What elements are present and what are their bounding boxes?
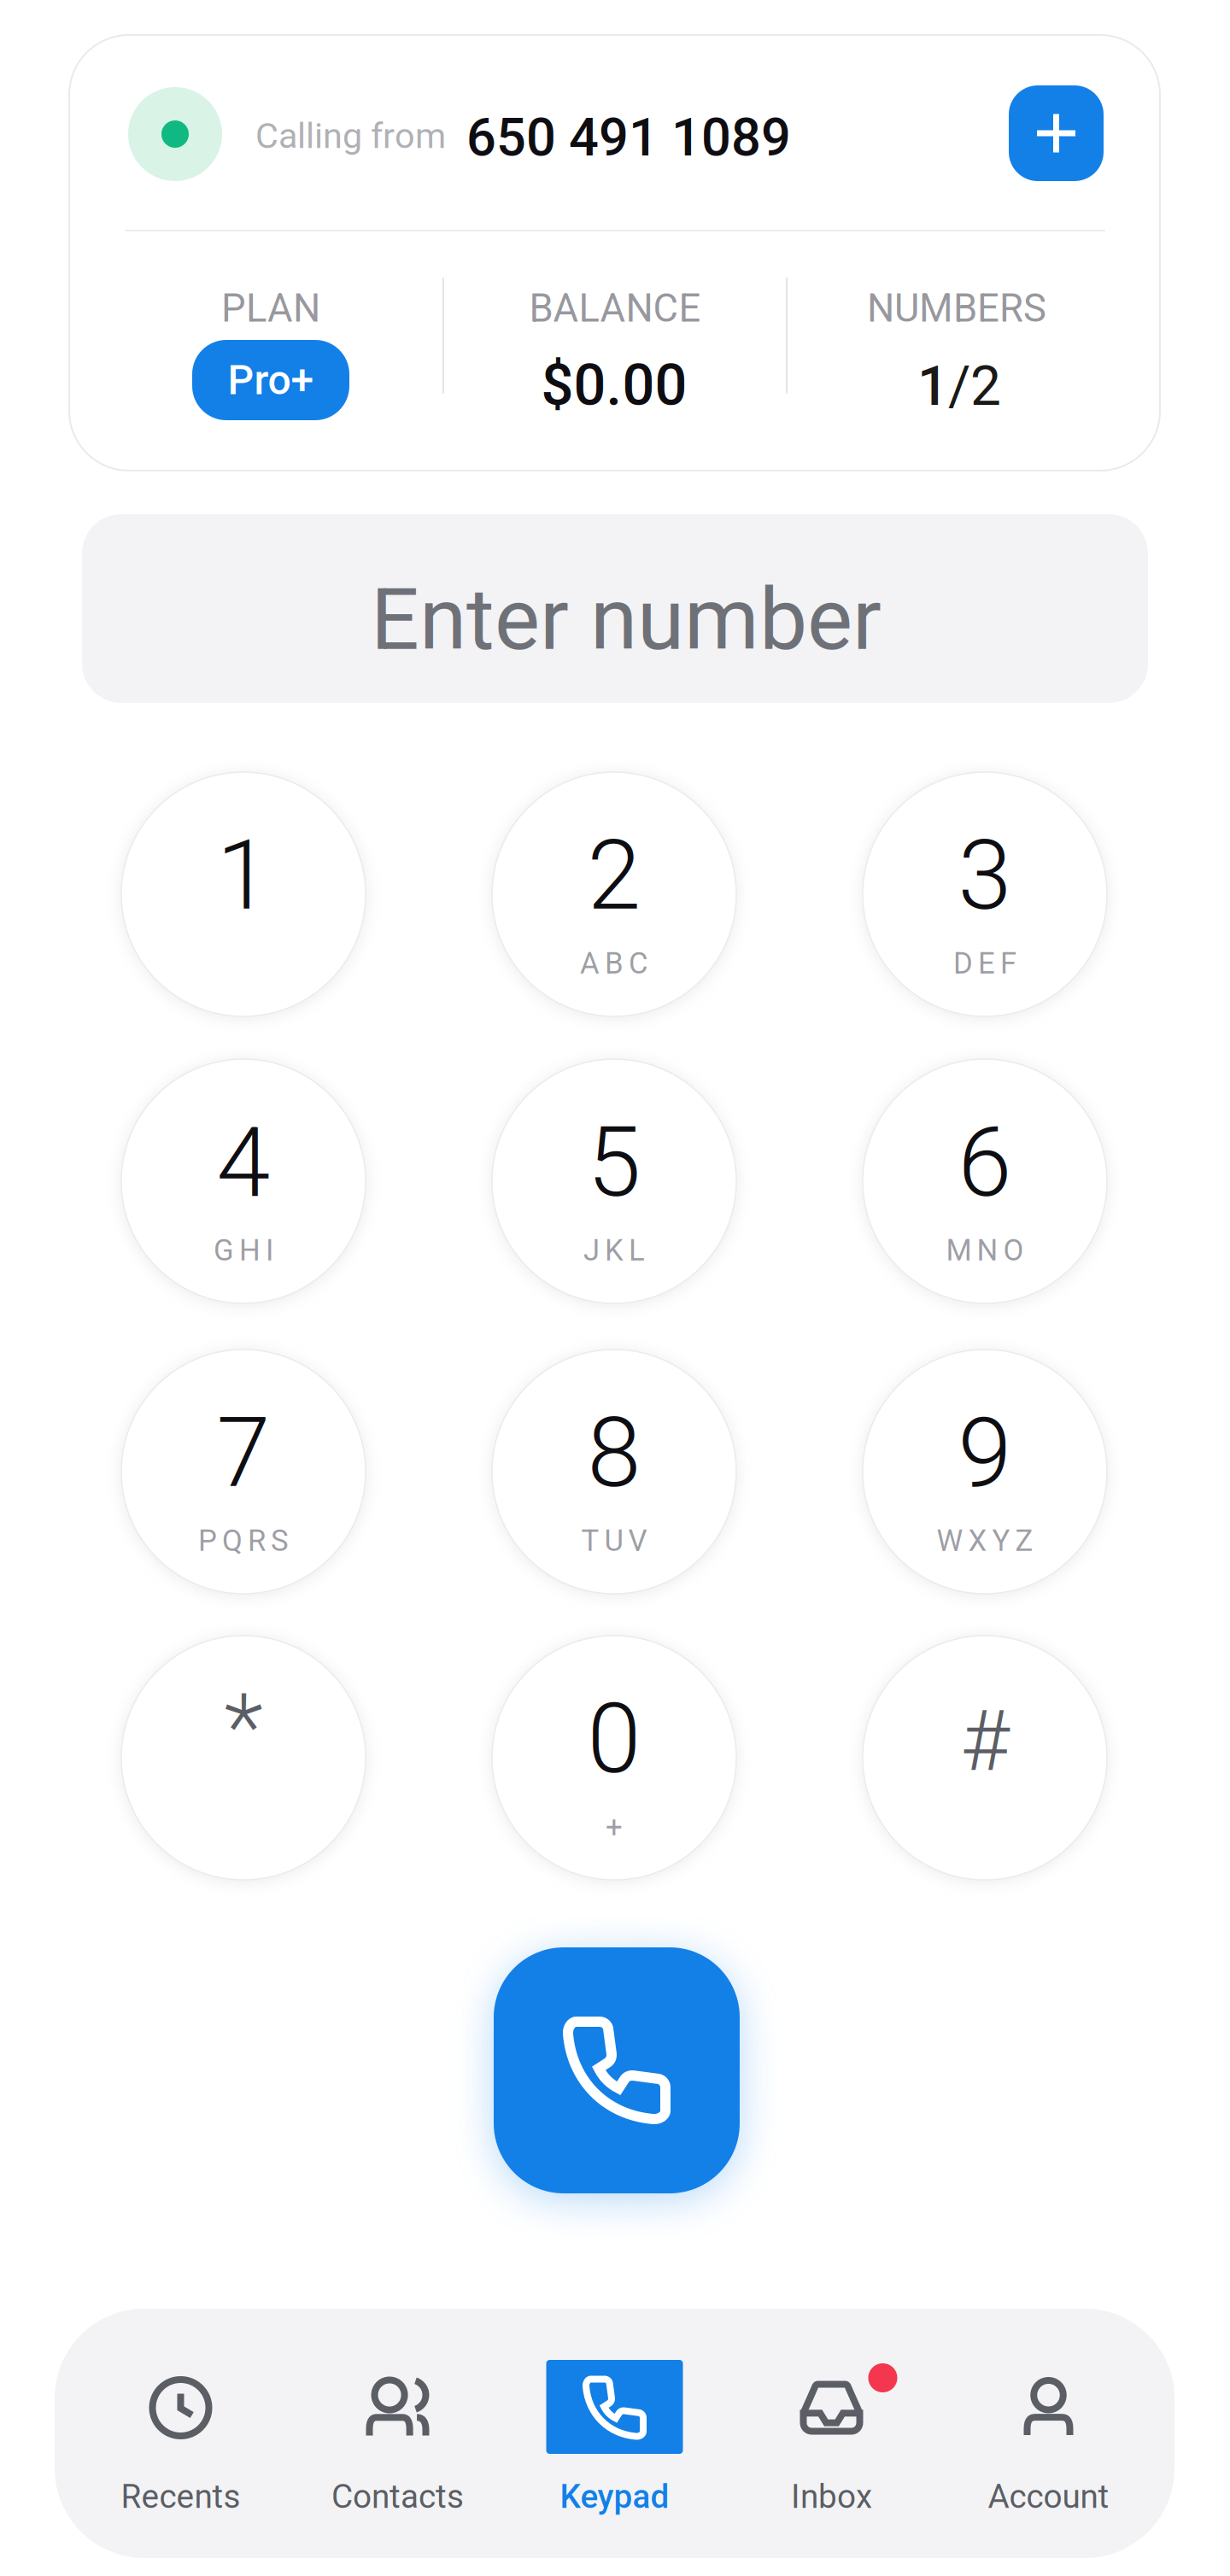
staticText: Inbox [791, 2477, 872, 2516]
staticText: 5 [587, 1106, 641, 1219]
button[interactable]: Enter number [82, 514, 1148, 703]
staticText: BALANCE [529, 286, 701, 331]
staticText: Calling from [255, 115, 446, 157]
button[interactable]: 1 [121, 772, 366, 1016]
staticText: GHI [214, 1233, 273, 1268]
button[interactable]: Inbox [723, 2309, 940, 2558]
button[interactable]: 3 [863, 772, 1107, 1016]
staticText: # [961, 1692, 1009, 1791]
button[interactable]: Add number [1009, 85, 1104, 181]
button[interactable]: 9 [863, 1349, 1107, 1594]
staticText: 3 [958, 819, 1012, 932]
button[interactable]: 0 [492, 1636, 736, 1880]
staticText: 6 [958, 1106, 1012, 1219]
button[interactable]: 8 [492, 1349, 736, 1594]
button[interactable]: Keypad [506, 2309, 723, 2558]
staticText: Account [988, 2477, 1109, 2516]
staticText: PQRS [198, 1523, 289, 1558]
staticText: 0 [587, 1682, 641, 1796]
staticText: 2 [587, 819, 641, 932]
staticText: 1/2 [917, 355, 1001, 417]
staticText: Contacts [331, 2477, 464, 2516]
staticText: * [224, 1674, 263, 1781]
staticText: 650 491 1089 [466, 107, 791, 168]
button[interactable]: 7 [121, 1349, 366, 1594]
staticText: 1 [217, 819, 270, 932]
staticText: Pro+ [228, 356, 314, 404]
button[interactable]: 6 [863, 1059, 1107, 1303]
button[interactable]: * [121, 1636, 366, 1880]
button[interactable]: 4 [121, 1059, 366, 1303]
staticText: TUV [581, 1523, 647, 1558]
staticText: MNO [946, 1233, 1024, 1268]
staticText: DEF [953, 946, 1016, 981]
staticText: 4 [217, 1106, 270, 1219]
staticText: NUMBERS [867, 286, 1046, 331]
button[interactable]: # [863, 1636, 1107, 1880]
button[interactable]: 2 [492, 772, 736, 1016]
staticText: WXYZ [937, 1523, 1033, 1558]
staticText: JKL [583, 1233, 645, 1268]
staticText: 8 [587, 1396, 641, 1510]
staticText: 9 [958, 1396, 1012, 1510]
button[interactable]: Recents [72, 2309, 289, 2558]
staticText: Enter number [371, 570, 881, 670]
button[interactable]: Contacts [289, 2309, 506, 2558]
button[interactable]: Call [494, 1947, 740, 2193]
staticText: $0.00 [541, 352, 687, 419]
staticText: 7 [217, 1396, 270, 1510]
staticText: + [606, 1810, 623, 1844]
staticText: ABC [580, 946, 648, 981]
button[interactable]: Account [940, 2309, 1157, 2558]
staticText: Keypad [560, 2477, 669, 2516]
button[interactable]: 5 [492, 1059, 736, 1303]
staticText: PLAN [221, 286, 320, 331]
staticText: Recents [121, 2477, 240, 2516]
